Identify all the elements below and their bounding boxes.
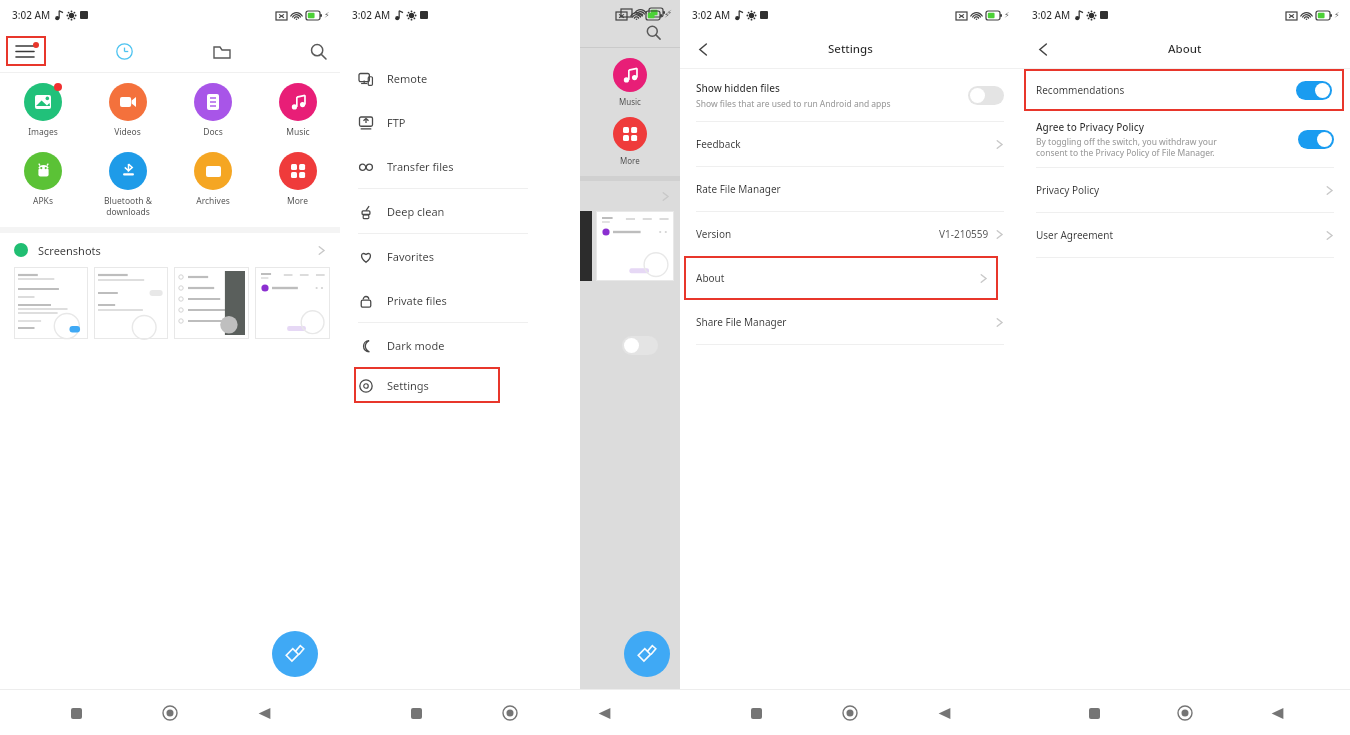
staticText: 3:02 AM [352, 8, 391, 22]
button[interactable]: Home [1167, 695, 1203, 731]
button[interactable]: Toggle [1298, 130, 1334, 149]
button[interactable]: Favorites [340, 234, 680, 278]
button[interactable]: Home [152, 695, 188, 731]
staticText: Private files [387, 293, 447, 308]
button[interactable] [94, 267, 168, 339]
staticText: 3:02 AM [1032, 8, 1071, 22]
button[interactable]: Feedback [680, 122, 1020, 166]
staticText: User Agreement [1036, 228, 1113, 242]
staticText: More [620, 155, 640, 166]
staticText: ⚡ [324, 11, 330, 20]
staticText: Videos [114, 126, 141, 138]
button[interactable]: Clean [272, 631, 318, 677]
button[interactable]: Search [640, 19, 666, 45]
staticText: 3:02 AM [12, 8, 51, 22]
button[interactable]: Music [255, 83, 340, 138]
staticText: Remote [387, 71, 428, 86]
button[interactable]: Dark mode [340, 323, 680, 367]
staticText: Version [696, 227, 732, 241]
staticText: Favorites [387, 249, 434, 264]
button[interactable]: Recommendations [1024, 69, 1344, 111]
staticText: Agree to Privacy Policy [1036, 120, 1145, 134]
button[interactable]: Back [246, 695, 282, 731]
button[interactable] [174, 267, 249, 339]
button[interactable]: Toggle [622, 336, 658, 355]
staticText: Bluetooth & downloads [104, 195, 152, 217]
button[interactable]: Docs [170, 83, 255, 138]
staticText: ⚡ [1004, 11, 1010, 20]
button[interactable]: Settings [354, 367, 500, 403]
staticText: ⚡ [664, 11, 670, 20]
staticText: V1-210559 [939, 227, 989, 241]
button[interactable]: Home [492, 695, 528, 731]
button[interactable]: Clean [624, 631, 670, 677]
button[interactable]: Screenshots [0, 233, 340, 267]
staticText: Privacy Policy [1036, 183, 1100, 197]
staticText: APKs [33, 195, 53, 207]
staticText: Show files that are used to run Android … [696, 98, 891, 110]
staticText: ⚡ [667, 9, 672, 17]
button[interactable]: Back [1259, 695, 1295, 731]
staticText: Feedback [696, 137, 741, 151]
staticText: Music [286, 126, 310, 138]
button[interactable]: Remote [340, 56, 680, 100]
button[interactable]: APKs [0, 152, 85, 207]
button[interactable]: Agree to Privacy Policy [1020, 111, 1350, 167]
button[interactable]: Archives [170, 152, 255, 207]
staticText: FTP [387, 115, 406, 130]
staticText: Images [28, 126, 58, 138]
staticText: 3:02 AM [692, 8, 731, 22]
staticText: Share File Manager [696, 315, 787, 329]
button[interactable]: Toggle [1296, 81, 1332, 100]
button[interactable]: Recents [398, 695, 434, 731]
staticText: Deep clean [387, 204, 445, 219]
staticText: Archives [196, 195, 230, 207]
staticText: Screenshots [38, 243, 101, 258]
button[interactable]: Search [300, 31, 336, 71]
button[interactable] [255, 267, 330, 339]
staticText: About [696, 271, 725, 285]
staticText: Settings [387, 378, 429, 393]
staticText: Docs [203, 126, 223, 138]
button[interactable]: Toggle [968, 86, 1004, 105]
button[interactable]: Transfer files [340, 144, 680, 188]
button[interactable]: Version [680, 212, 1020, 256]
button[interactable]: About [684, 256, 998, 300]
button[interactable]: More [255, 152, 340, 207]
button[interactable]: Recents [1076, 695, 1112, 731]
button[interactable]: Recents [58, 695, 94, 731]
button[interactable]: Bluetooth & downloads [85, 152, 170, 217]
button[interactable]: Rate File Manager [680, 167, 1020, 211]
staticText: More [287, 195, 308, 207]
button[interactable]: Folders [202, 31, 242, 71]
button[interactable]: FTP [340, 100, 680, 144]
staticText: Rate File Manager [696, 182, 781, 196]
staticText: Recommendations [1036, 83, 1125, 97]
button[interactable]: Deep clean [340, 189, 680, 233]
button[interactable]: Back [1028, 34, 1058, 64]
staticText: Transfer files [387, 159, 454, 174]
button[interactable]: Images [0, 83, 85, 138]
staticText: About [1168, 41, 1202, 57]
button[interactable]: Recent [104, 31, 144, 71]
button[interactable]: Private files [340, 278, 680, 322]
button[interactable]: Videos [85, 83, 170, 138]
button[interactable] [14, 267, 88, 339]
button[interactable]: Back [926, 695, 962, 731]
staticText: Show hidden files [696, 81, 780, 95]
button[interactable]: Back [586, 695, 622, 731]
button[interactable]: Share File Manager [680, 300, 1020, 344]
staticText: Settings [828, 41, 873, 57]
button[interactable]: Recents [738, 695, 774, 731]
button[interactable]: Back [688, 34, 718, 64]
staticText: By toggling off the switch, you withdraw… [1036, 136, 1217, 158]
button[interactable]: Menu [6, 36, 46, 66]
staticText: Dark mode [387, 338, 445, 353]
button[interactable] [596, 211, 674, 281]
staticText: ⚡ [1334, 11, 1340, 20]
button[interactable]: Privacy Policy [1020, 168, 1350, 212]
button[interactable]: User Agreement [1020, 213, 1350, 257]
staticText: Music [619, 96, 641, 107]
button[interactable]: Show hidden files [680, 69, 1020, 121]
button[interactable]: Home [832, 695, 868, 731]
